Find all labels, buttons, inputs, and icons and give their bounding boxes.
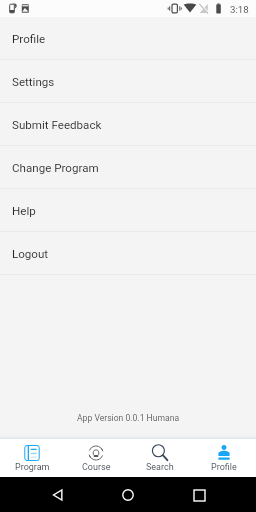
staticText: Course <box>82 462 111 473</box>
button[interactable]: Help <box>0 189 256 232</box>
staticText: Help <box>12 204 36 218</box>
button[interactable]: Search <box>128 439 192 477</box>
button[interactable]: Logout <box>0 232 256 275</box>
staticText: Profile <box>12 32 46 46</box>
button[interactable]: Home <box>115 482 141 508</box>
button[interactable]: Recents <box>186 482 212 508</box>
staticText: Profile <box>211 462 237 473</box>
button[interactable]: Profile <box>192 439 256 477</box>
button[interactable]: Profile <box>0 17 256 60</box>
button[interactable]: Back <box>45 482 71 508</box>
staticText: Logout <box>12 247 49 261</box>
button[interactable]: Change Program <box>0 146 256 189</box>
staticText: Submit Feedback <box>12 118 102 132</box>
button[interactable]: Submit Feedback <box>0 103 256 146</box>
staticText: 3:18 <box>230 4 249 15</box>
button[interactable]: Settings <box>0 60 256 103</box>
staticText: Program <box>15 462 50 473</box>
button[interactable]: Course <box>64 439 128 477</box>
staticText: App Version 0.0.1 Humana <box>77 413 180 423</box>
staticText: Change Program <box>12 161 99 175</box>
button[interactable]: Program <box>0 439 64 477</box>
staticText: Settings <box>12 75 55 89</box>
staticText: Search <box>146 462 174 473</box>
